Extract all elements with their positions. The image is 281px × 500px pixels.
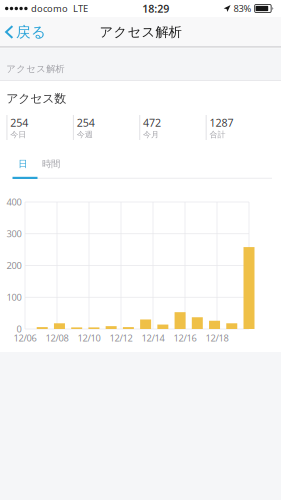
staticText: 200: [6, 259, 21, 272]
staticText: 合計: [209, 130, 225, 139]
staticText: アクセス解析: [6, 63, 64, 75]
staticText: 12/16: [173, 332, 196, 344]
button[interactable]: 日: [11, 153, 35, 175]
staticText: アクセス解析: [99, 24, 181, 40]
staticText: 254: [10, 116, 28, 130]
staticText: 100: [6, 291, 21, 303]
staticText: 今週: [77, 130, 93, 139]
staticText: 日: [18, 158, 27, 170]
staticText: 12/06: [13, 332, 36, 344]
staticText: 12/12: [109, 332, 132, 344]
button[interactable]: 戻る: [0, 17, 58, 47]
staticText: 18:29: [142, 1, 169, 16]
staticText: アクセス数: [6, 91, 66, 106]
staticText: 254: [77, 116, 95, 130]
staticText: 83%: [233, 2, 251, 15]
staticText: 400: [6, 196, 21, 208]
staticText: 今月: [143, 130, 159, 139]
staticText: 時間: [42, 158, 60, 170]
staticText: 1287: [209, 116, 233, 130]
staticText: 472: [143, 116, 161, 130]
staticText: 戻る: [16, 23, 46, 41]
staticText: 0: [16, 323, 21, 335]
button[interactable]: 時間: [37, 153, 65, 175]
staticText: 12/08: [45, 332, 68, 344]
staticText: 300: [6, 228, 21, 240]
staticText: 今日: [10, 130, 26, 139]
staticText: 12/14: [141, 332, 164, 344]
staticText: docomo: [31, 2, 68, 15]
staticText: 12/10: [77, 332, 100, 344]
staticText: LTE: [73, 2, 88, 15]
staticText: 12/18: [205, 332, 228, 344]
